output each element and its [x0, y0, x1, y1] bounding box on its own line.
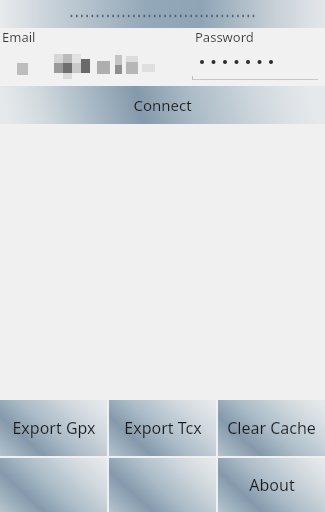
button[interactable]: Password field: [190, 46, 322, 86]
button[interactable]: [109, 458, 216, 512]
staticText: Clear Cache: [227, 417, 316, 439]
button[interactable]: About: [218, 458, 325, 512]
staticText: Password: [195, 28, 254, 46]
button[interactable]: Export Tcx: [109, 400, 216, 456]
button[interactable]: Export Gpx: [0, 400, 107, 456]
button[interactable]: [0, 458, 107, 512]
button[interactable]: Connect: [0, 86, 325, 124]
staticText: Email: [2, 28, 36, 46]
staticText: Export Tcx: [124, 417, 202, 439]
staticText: Export Gpx: [12, 417, 96, 439]
button[interactable]: Clear Cache: [218, 400, 325, 456]
button[interactable]: Email field: [0, 46, 185, 86]
staticText: About: [249, 474, 295, 496]
staticText: Connect: [133, 95, 192, 115]
